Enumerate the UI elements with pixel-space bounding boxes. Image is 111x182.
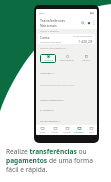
staticText: Conta/IBAN * [40,72,54,75]
staticText: PT50 0000 0000 0000 0000 0000 0 [40,84,75,87]
button[interactable]: Contas [49,125,61,135]
staticText: Mais [89,131,94,134]
staticText: CONTA A DEBITAR [40,30,59,33]
button[interactable]: Transferir [73,125,85,135]
staticText: Internacional [60,59,74,62]
button[interactable]: Internacional [59,54,75,63]
staticText: Início [40,131,46,134]
staticText: Transferir [74,131,84,134]
staticText: ▮▮▮ [90,12,94,15]
staticText: 1 430,28 [78,39,93,44]
staticText: PT50 0000 0000 0000 [40,41,61,44]
button[interactable]: MB WAY [78,54,94,63]
button[interactable]: Conta [38,34,95,44]
staticText: MB WAY [82,59,91,62]
staticText: Conta [40,35,50,40]
button[interactable]: Cartões [61,125,73,135]
staticText: Nome do Beneficiário * [40,99,65,102]
staticText: Contas [51,131,59,134]
button[interactable]: Favourite [87,21,91,25]
staticText: 09:30 [39,12,45,15]
staticText: Transferências Nacionais [40,18,66,28]
staticText: TIPO DE TRANSFERÊNCIA [40,47,66,50]
staticText: Tipo de Operação * [40,120,60,123]
button[interactable]: Início [36,125,49,135]
button[interactable]: Mais [85,125,97,135]
button[interactable]: Search [81,21,85,25]
staticText: € Montante * [40,109,55,112]
button[interactable]: More options [93,20,95,25]
staticText: Realize transferências ou pagamentos de … [6,147,96,174]
staticText: Nacional [44,59,53,62]
staticText: Cartões [63,131,71,134]
staticText: SALDO DISPONÍVEL [73,35,93,38]
button[interactable]: Nacional [40,54,56,63]
